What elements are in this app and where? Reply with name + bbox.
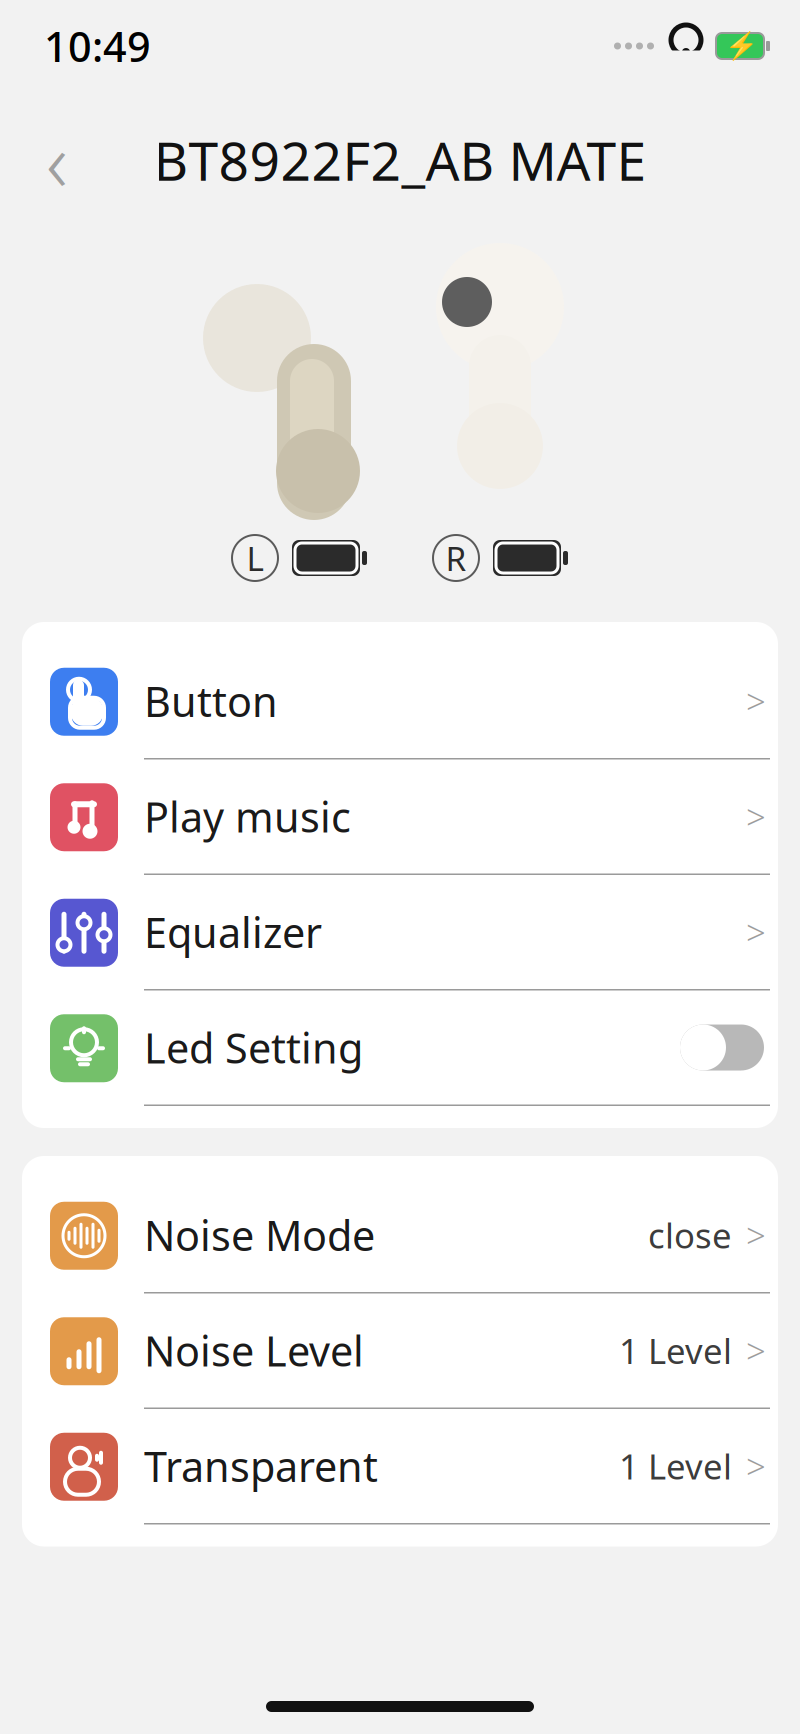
staticText: > xyxy=(746,1327,766,1373)
staticText: ‹ xyxy=(46,105,68,215)
staticText: L xyxy=(246,536,263,580)
staticText: 1 Level xyxy=(619,1327,732,1373)
staticText: ⚡ xyxy=(724,31,757,61)
staticText: Equalizer xyxy=(144,905,322,959)
staticText: > xyxy=(746,678,766,724)
staticText: Noise Level xyxy=(144,1323,364,1378)
staticText: Button xyxy=(144,674,278,728)
button[interactable]: Transparent xyxy=(22,1409,778,1524)
staticText: Transparent xyxy=(144,1439,378,1493)
button[interactable]: Equalizer xyxy=(22,875,778,990)
staticText: 1 Level xyxy=(619,1443,732,1489)
button[interactable]: Play music xyxy=(22,759,778,875)
staticText: 10:49 xyxy=(44,19,151,73)
staticText: Led Setting xyxy=(144,1020,363,1075)
staticText: R xyxy=(445,536,466,580)
staticText: Play music xyxy=(144,789,351,844)
staticText: > xyxy=(746,793,766,839)
staticText: > xyxy=(746,1443,766,1489)
button[interactable]: Noise Mode xyxy=(22,1178,778,1293)
staticText: close xyxy=(648,1212,732,1258)
button[interactable]: Button xyxy=(22,644,778,759)
staticText: > xyxy=(746,1212,766,1258)
button[interactable]: Led Setting xyxy=(22,990,778,1106)
button[interactable]: Back xyxy=(18,121,96,199)
button[interactable]: Noise Level xyxy=(22,1293,778,1409)
staticText: BT8922F2_AB MATE xyxy=(153,125,646,195)
staticText: Noise Mode xyxy=(144,1208,375,1262)
staticText: > xyxy=(746,909,766,955)
